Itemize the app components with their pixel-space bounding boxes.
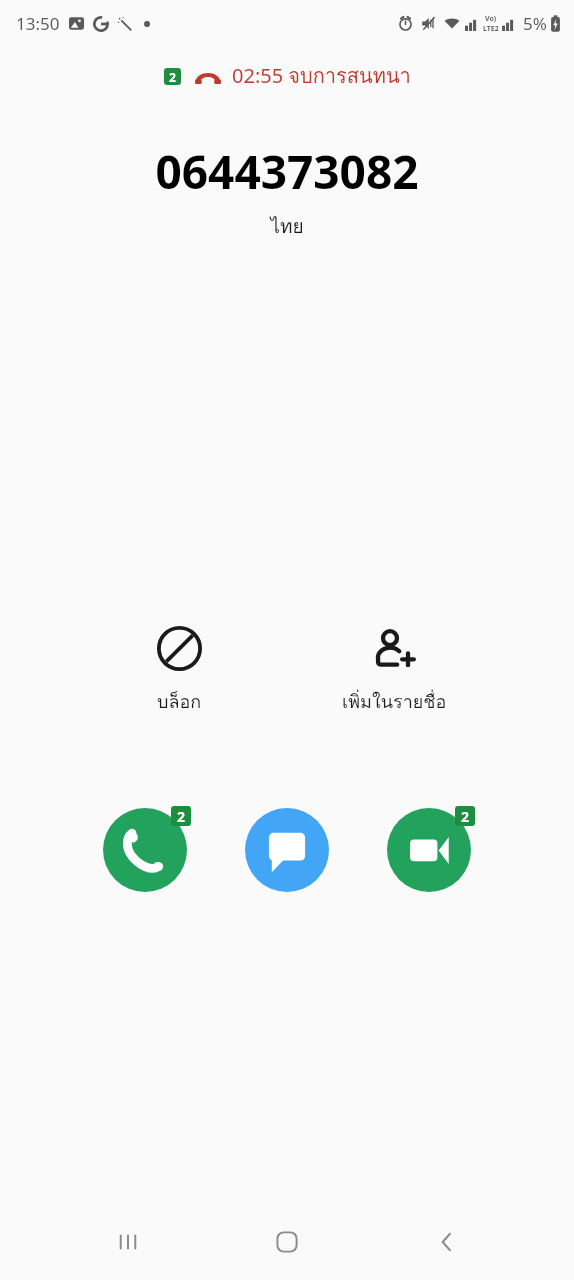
staticText: 0644373082: [155, 140, 419, 203]
other: เพิ่มในรายชื่อ: [372, 626, 417, 671]
staticText: Vo): [485, 14, 497, 24]
button[interactable]: Back: [415, 1210, 479, 1274]
staticText: 2: [169, 69, 176, 85]
staticText: LTE2: [483, 24, 499, 34]
staticText: 02:55 จบการสนทนา: [232, 60, 411, 92]
staticText: บล็อก: [157, 687, 202, 716]
button[interactable]: ข้อความ: [239, 802, 335, 898]
staticText: 2: [177, 807, 186, 826]
staticText: 2: [461, 807, 470, 826]
button[interactable]: Recents: [96, 1210, 160, 1274]
staticText: 5%: [523, 12, 547, 35]
button[interactable]: เพิ่มในรายชื่อ: [328, 622, 461, 720]
staticText: เพิ่มในรายชื่อ: [342, 687, 447, 716]
button[interactable]: โทร: [97, 802, 193, 898]
staticText: 13:50: [16, 12, 60, 35]
staticText: ไทย: [270, 211, 304, 241]
button[interactable]: บล็อก: [139, 622, 220, 720]
button[interactable]: วิดีโอคอล: [381, 802, 477, 898]
button[interactable]: Home: [255, 1210, 319, 1274]
other: บล็อก: [157, 626, 202, 671]
